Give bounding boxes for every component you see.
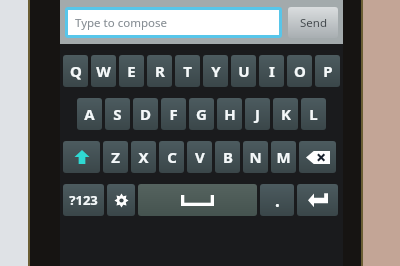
staticText: H <box>224 104 236 124</box>
button[interactable]: Enter <box>297 184 338 216</box>
button[interactable]: U <box>231 55 256 87</box>
button[interactable]: E <box>119 55 144 87</box>
button[interactable]: H <box>217 98 242 130</box>
staticText: E <box>127 61 136 81</box>
button[interactable]: N <box>243 141 268 173</box>
button[interactable]: B <box>215 141 240 173</box>
staticText: M <box>276 147 291 167</box>
button[interactable]: R <box>147 55 172 87</box>
button[interactable]: C <box>159 141 184 173</box>
staticText: X <box>138 147 149 167</box>
staticText: G <box>196 104 207 124</box>
button[interactable]: Space <box>138 184 257 216</box>
button[interactable]: J <box>245 98 270 130</box>
staticText: Q <box>70 61 82 81</box>
staticText: S <box>113 104 122 124</box>
button[interactable]: F <box>161 98 186 130</box>
button[interactable]: Type to compose <box>68 10 279 35</box>
button[interactable]: . <box>260 184 294 216</box>
staticText: T <box>183 61 192 81</box>
staticText: . <box>275 189 280 212</box>
button[interactable]: L <box>301 98 326 130</box>
button[interactable]: Shift <box>63 141 100 173</box>
staticText: O <box>294 61 306 81</box>
staticText: F <box>169 104 178 124</box>
staticText: D <box>140 104 151 124</box>
button[interactable]: D <box>133 98 158 130</box>
button[interactable]: A <box>77 98 102 130</box>
button[interactable]: Send <box>288 7 338 38</box>
staticText: L <box>309 104 318 124</box>
button[interactable]: P <box>315 55 340 87</box>
button[interactable]: X <box>131 141 156 173</box>
button[interactable]: W <box>91 55 116 87</box>
staticText: Send <box>300 15 327 31</box>
staticText: B <box>223 147 233 167</box>
staticText: Y <box>211 61 221 81</box>
button[interactable]: O <box>287 55 312 87</box>
button[interactable]: ?123 <box>63 184 104 216</box>
button[interactable]: Settings <box>107 184 135 216</box>
button[interactable]: K <box>273 98 298 130</box>
staticText: P <box>323 61 333 81</box>
staticText: C <box>167 147 177 167</box>
staticText: A <box>84 104 95 124</box>
staticText: J <box>255 104 260 124</box>
staticText: U <box>238 61 250 81</box>
staticText: N <box>249 147 262 167</box>
button[interactable]: Q <box>63 55 88 87</box>
staticText: ?123 <box>69 191 98 209</box>
staticText: R <box>155 61 165 81</box>
button[interactable]: Z <box>103 141 128 173</box>
button[interactable]: M <box>271 141 296 173</box>
staticText: W <box>96 61 111 81</box>
button[interactable]: G <box>189 98 214 130</box>
staticText: I <box>269 61 275 81</box>
button[interactable]: T <box>175 55 200 87</box>
staticText: Type to compose <box>75 15 167 31</box>
button[interactable]: I <box>259 55 284 87</box>
staticText: V <box>195 147 205 167</box>
button[interactable]: V <box>187 141 212 173</box>
staticText: Z <box>111 147 120 167</box>
button[interactable]: S <box>105 98 130 130</box>
button[interactable]: Y <box>203 55 228 87</box>
button[interactable]: Backspace <box>299 141 336 173</box>
staticText: K <box>281 104 291 124</box>
